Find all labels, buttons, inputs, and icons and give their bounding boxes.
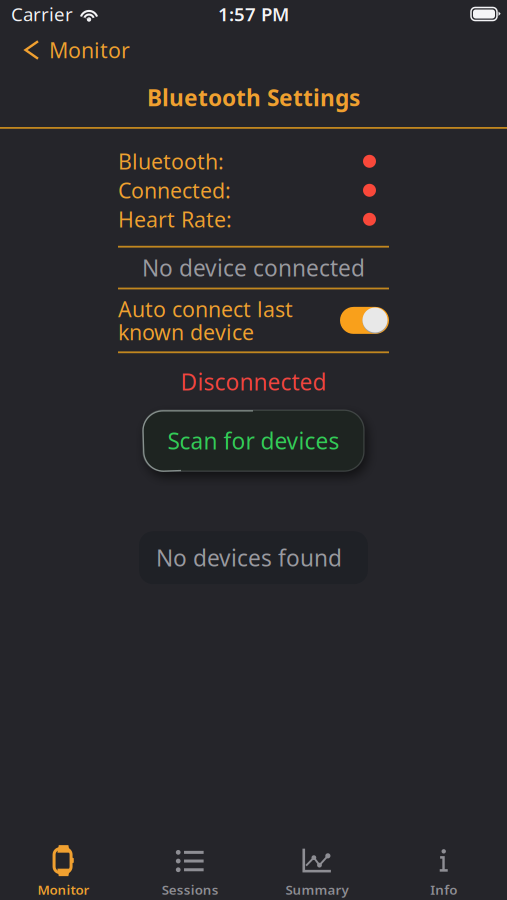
staticText: Disconnected (180, 367, 326, 397)
button[interactable]: Monitor (0, 28, 142, 68)
staticText: Heart Rate: (118, 205, 232, 233)
button[interactable]: Scan for devices (143, 410, 364, 471)
staticText: Summary (285, 881, 348, 898)
staticText: No devices found (156, 543, 342, 573)
staticText: Connected: (118, 176, 231, 204)
staticText: 1:57 PM (218, 2, 289, 26)
button[interactable]: Info (380, 828, 507, 900)
button[interactable]: Sessions (127, 828, 254, 900)
button[interactable]: Monitor (0, 828, 127, 900)
staticText: Bluetooth: (118, 147, 224, 175)
button[interactable]: Summary (253, 828, 380, 900)
staticText: Carrier (11, 2, 73, 26)
staticText: Sessions (162, 881, 219, 898)
staticText: Bluetooth Settings (147, 82, 360, 112)
staticText: Scan for devices (167, 426, 339, 456)
staticText: Auto connect last (118, 295, 293, 323)
staticText: No device connected (142, 252, 365, 283)
staticText: Info (430, 881, 457, 898)
staticText: known device (118, 318, 254, 346)
staticText: Monitor (37, 881, 89, 898)
staticText: Monitor (49, 36, 130, 64)
